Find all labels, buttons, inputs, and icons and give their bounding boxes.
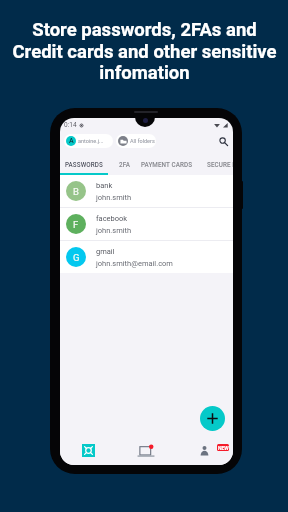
button[interactable]: F [60,208,233,240]
button[interactable]: All folders [116,134,156,148]
staticText: G [73,252,80,263]
button[interactable]: G [60,241,233,273]
staticText: PASSWORDS [65,161,103,168]
button[interactable]: PASSWORDS [60,153,108,175]
staticText: A [69,137,74,145]
button[interactable]: 2FA [108,153,141,175]
button[interactable]: Vault [60,436,117,465]
staticText: F [73,219,79,230]
staticText: gmail [96,247,115,256]
button[interactable]: Search [216,134,230,148]
button[interactable]: Devices [117,436,175,465]
staticText: john.smith [96,193,132,202]
staticText: john.smith@email.com [96,259,173,268]
button[interactable]: PAYMENT CARDS [141,153,192,175]
staticText: All folders [130,138,155,144]
staticText: 2FA [119,161,130,168]
button[interactable]: Add new item [200,406,225,431]
staticText: bank [96,181,113,190]
button[interactable]: B [60,175,233,207]
button[interactable]: SECURE NOTES [192,153,233,175]
staticText: facebook [96,214,128,223]
staticText: antoine.j... [78,138,104,144]
button[interactable]: A [64,134,113,148]
staticText: Store passwords, 2FAs and Credit cards a… [12,19,277,83]
staticText: PAYMENT CARDS [141,161,193,168]
button[interactable]: Account [175,436,233,465]
staticText: 0:14 [64,121,77,129]
staticText: B [73,186,79,197]
staticText: SECURE NOTES [207,161,233,168]
staticText: NEW [218,445,229,451]
staticText: john.smith [96,226,132,235]
